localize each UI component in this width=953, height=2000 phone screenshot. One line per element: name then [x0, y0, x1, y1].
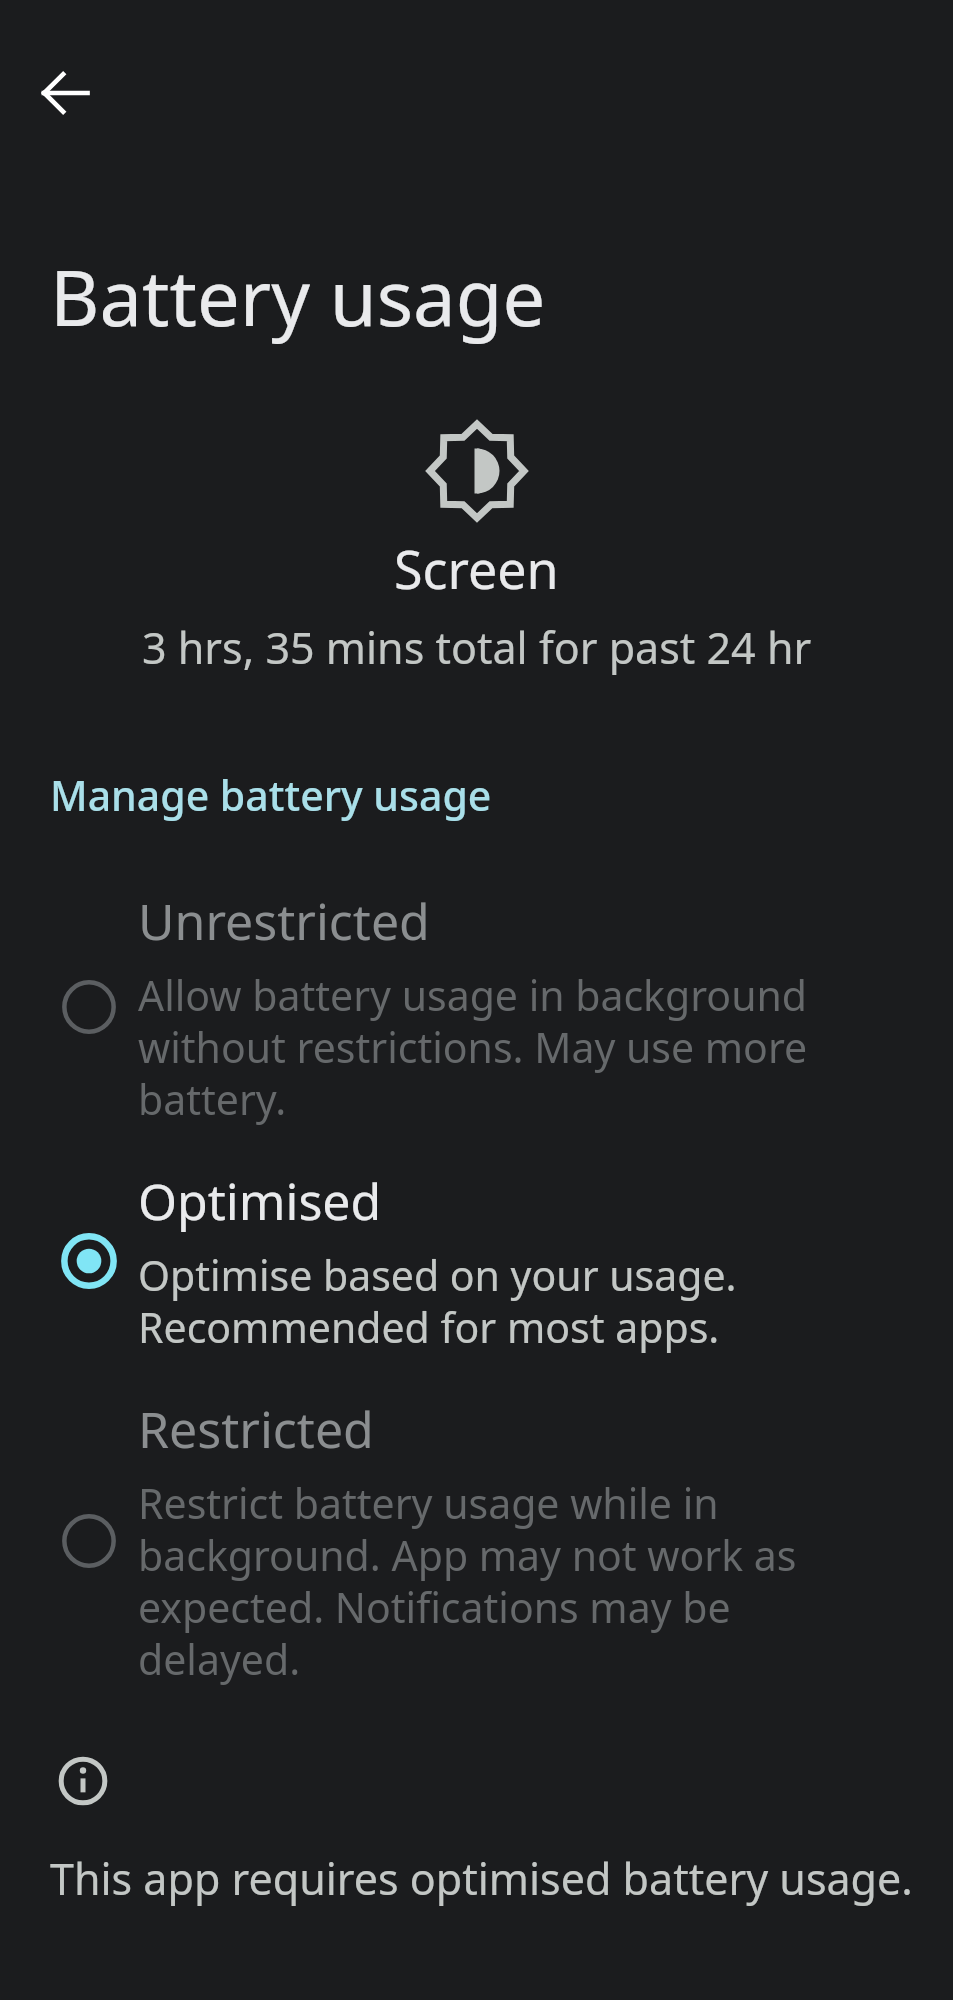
- button[interactable]: Back: [18, 46, 112, 140]
- staticText: Optimised: [138, 1167, 382, 1235]
- button[interactable]: Manage battery usage: [0, 763, 953, 827]
- staticText: Manage battery usage: [50, 767, 492, 823]
- button[interactable]: Optimised: [0, 1147, 953, 1375]
- staticText: Battery usage: [50, 245, 546, 349]
- staticText: Unrestricted: [138, 887, 430, 955]
- staticText: Screen: [394, 533, 559, 604]
- staticText: Allow battery usage in background withou…: [138, 967, 903, 1127]
- staticText: Restricted: [138, 1395, 374, 1463]
- staticText: Restrict battery usage while in backgrou…: [138, 1475, 903, 1687]
- other: Information: [57, 1755, 109, 1807]
- button[interactable]: Unrestricted: [0, 867, 953, 1147]
- staticText: 3 hrs, 35 mins total for past 24 hr: [142, 618, 812, 677]
- button[interactable]: Restricted: [0, 1375, 953, 1707]
- staticText: Optimise based on your usage. Recommende…: [138, 1247, 903, 1355]
- staticText: This app requires optimised battery usag…: [50, 1849, 913, 1908]
